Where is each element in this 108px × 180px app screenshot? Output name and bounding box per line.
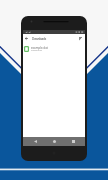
staticText: Download [31,49,42,52]
button[interactable]: example.dat [23,44,85,55]
button[interactable]: Recent apps [66,137,80,146]
staticText: Downloads [32,37,46,41]
button[interactable]: Navigate up [23,34,30,43]
button[interactable]: Home [47,137,61,146]
button[interactable]: Sort [76,34,84,43]
staticText: example.dat [31,46,48,50]
button[interactable]: Back [28,137,42,146]
